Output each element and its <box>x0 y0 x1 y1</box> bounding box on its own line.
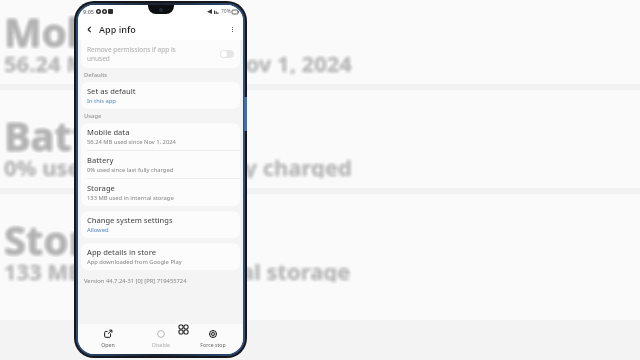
staticText: Defaults <box>84 71 108 79</box>
staticText: 56.24 MB used since Nov 1, 2024 <box>6 46 354 72</box>
staticText: 0% used since last fully charged <box>2 150 351 176</box>
staticText: App downloaded from Google Play <box>87 258 182 266</box>
staticText: 0% used since last fully charged <box>5 151 354 177</box>
staticText: 133 MB used in internal storage <box>4 254 351 280</box>
staticText: Battery <box>87 155 114 165</box>
staticText: Battery <box>6 107 156 151</box>
staticText: 0% used since last fully charged <box>4 153 353 179</box>
staticText: 0% used since last fully charged <box>6 154 355 180</box>
button[interactable]: Recent apps <box>175 322 191 336</box>
staticText: Mobile data <box>3 4 240 48</box>
staticText: 0% used since last fully charged <box>2 152 351 178</box>
staticText: 133 MB used in internal storage <box>2 255 349 281</box>
staticText: Storage <box>4 214 159 258</box>
button[interactable]: Mobile data <box>81 123 240 150</box>
staticText: 133 MB used in internal storage <box>3 258 350 284</box>
staticText: Mobile data <box>6 5 243 49</box>
staticText: 56.24 MB used since Nov 1, 2024 <box>2 49 350 75</box>
staticText: Storage <box>2 212 157 256</box>
staticText: 0% used since last fully charged <box>3 151 352 177</box>
staticText: 56.24 MB used since Nov 1, 2024 <box>3 46 351 72</box>
staticText: 133 MB used in internal storage <box>6 254 353 280</box>
staticText: Storage <box>5 213 160 257</box>
staticText: Version 44.7.24-31 [0] [PR] 719455724 <box>84 277 187 285</box>
staticText: Storage <box>3 210 158 254</box>
staticText: Allowed <box>87 226 109 234</box>
staticText: Storage <box>3 214 158 258</box>
staticText: 133 MB used in internal storage <box>2 254 349 280</box>
button[interactable]: Battery <box>81 151 240 178</box>
staticText: Battery <box>3 107 153 151</box>
staticText: 133 MB used in internal storage <box>2 257 349 283</box>
staticText: Mobile data <box>2 2 239 46</box>
staticText: Battery <box>3 106 153 150</box>
staticText: Mobile data <box>2 6 239 50</box>
staticText: Battery <box>4 110 154 154</box>
staticText: Storage <box>5 211 160 255</box>
staticText: 0% used since last fully charged <box>4 152 353 178</box>
staticText: Storage <box>3 212 158 256</box>
staticText: 133 MB used in internal storage <box>3 257 350 283</box>
staticText: Mobile data <box>3 6 240 50</box>
staticText: Storage <box>6 210 161 254</box>
staticText: 9:05 <box>83 8 94 15</box>
button[interactable]: Remove permissions if app is unused <box>81 40 240 68</box>
button[interactable]: Set as default <box>81 82 240 109</box>
staticText: Force stop <box>200 341 226 348</box>
staticText: Set as default <box>87 86 136 96</box>
button[interactable]: Open <box>86 327 130 350</box>
staticText: 133 MB used in internal storage <box>6 257 353 283</box>
staticText: 56.24 MB used since Nov 1, 2024 <box>5 49 353 75</box>
staticText: 56.24 MB used since Nov 1, 2024 <box>87 138 176 146</box>
staticText: Mobile data <box>6 3 243 47</box>
staticText: 0% used since last fully charged <box>4 151 353 177</box>
staticText: 56.24 MB used since Nov 1, 2024 <box>3 50 351 76</box>
button[interactable]: Storage <box>81 179 240 206</box>
staticText: 133 MB used in internal storage <box>4 255 351 281</box>
staticText: Battery <box>4 106 154 150</box>
staticText: Battery <box>6 109 156 153</box>
button[interactable]: Change system settings <box>81 211 240 238</box>
staticText: 133 MB used in internal storage <box>5 254 352 280</box>
staticText: Battery <box>5 108 155 152</box>
staticText: 133 MB used in internal storage <box>2 256 349 282</box>
staticText: Disable <box>152 341 170 348</box>
staticText: Storage <box>6 211 161 255</box>
staticText: Storage <box>4 213 159 257</box>
staticText: 133 MB used in internal storage <box>3 254 350 280</box>
staticText: 133 MB used in internal storage <box>5 257 352 283</box>
staticText: Battery <box>2 108 152 152</box>
staticText: Battery <box>4 108 154 152</box>
staticText: Mobile data <box>3 2 240 46</box>
staticText: Battery <box>5 110 155 154</box>
staticText: Battery <box>3 109 153 153</box>
staticText: 0% used since last fully charged <box>6 152 355 178</box>
staticText: 133 MB used in internal storage <box>6 256 353 282</box>
staticText: 0% used since last fully charged <box>3 152 352 178</box>
button[interactable]: Disable <box>139 327 183 350</box>
staticText: 133 MB used in internal storage <box>2 258 349 284</box>
staticText: Battery <box>2 110 152 154</box>
staticText: Battery <box>5 109 155 153</box>
staticText: 133 MB used in internal storage <box>4 258 351 284</box>
button[interactable]: More options <box>224 21 240 37</box>
staticText: Battery <box>2 109 152 153</box>
staticText: Battery <box>6 108 156 152</box>
staticText: 133 MB used in internal storage <box>4 257 351 283</box>
staticText: Battery <box>6 110 156 154</box>
staticText: Storage <box>5 214 160 258</box>
staticText: 133 MB used in internal storage <box>87 194 174 202</box>
staticText: App details in store <box>87 247 157 257</box>
staticText: Mobile data <box>4 5 241 49</box>
button[interactable]: Back <box>81 21 97 37</box>
staticText: Battery <box>3 110 153 154</box>
staticText: Storage <box>2 211 157 255</box>
staticText: 56.24 MB used since Nov 1, 2024 <box>3 49 351 75</box>
staticText: 0% used since last fully charged <box>4 154 353 180</box>
staticText: Storage <box>4 211 159 255</box>
staticText: 56.24 MB used since Nov 1, 2024 <box>6 47 354 73</box>
staticText: 56.24 MB used since Nov 1, 2024 <box>6 48 354 74</box>
button[interactable]: App details in store <box>81 243 240 270</box>
button[interactable]: Force stop <box>191 327 235 350</box>
staticText: 56.24 MB used since Nov 1, 2024 <box>4 46 352 72</box>
